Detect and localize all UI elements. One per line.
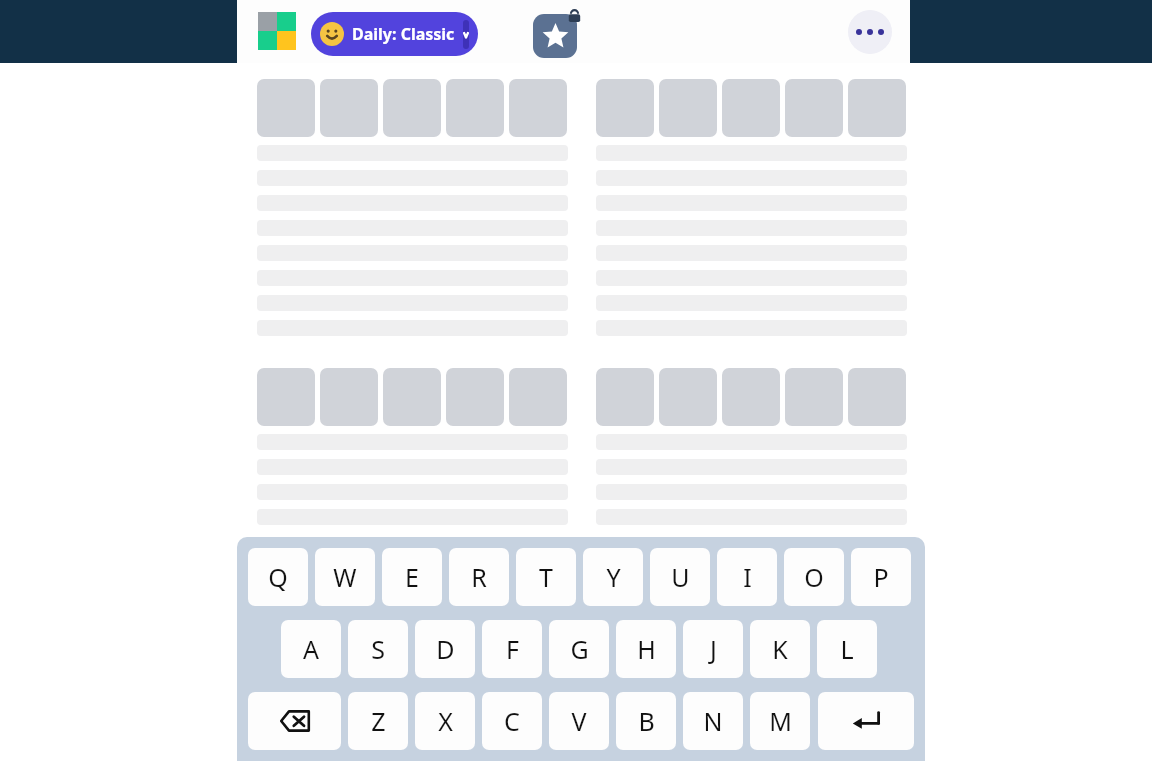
- staticText: I: [743, 560, 752, 594]
- staticText: Y: [606, 560, 621, 594]
- staticText: G: [570, 632, 589, 666]
- button[interactable]: B: [616, 692, 676, 750]
- button[interactable]: Z: [348, 692, 408, 750]
- staticText: Daily: Classic: [352, 23, 455, 45]
- staticText: W: [333, 560, 357, 594]
- staticText: U: [671, 560, 690, 594]
- staticText: Q: [268, 560, 288, 594]
- button[interactable]: Q: [248, 548, 308, 606]
- staticText: R: [471, 560, 487, 594]
- button[interactable]: C: [482, 692, 542, 750]
- staticText: C: [504, 704, 520, 738]
- button[interactable]: D: [415, 620, 475, 678]
- staticText: O: [804, 560, 824, 594]
- button[interactable]: J: [683, 620, 743, 678]
- button[interactable]: F: [482, 620, 542, 678]
- staticText: K: [772, 632, 788, 666]
- button[interactable]: K: [750, 620, 810, 678]
- staticText: V: [571, 704, 587, 738]
- button[interactable]: Home: [258, 12, 296, 50]
- staticText: A: [303, 632, 319, 666]
- button[interactable]: Backspace: [248, 692, 341, 750]
- staticText: J: [710, 632, 717, 666]
- staticText: P: [873, 560, 889, 594]
- staticText: E: [405, 560, 419, 594]
- staticText: T: [539, 560, 553, 594]
- button[interactable]: More options: [848, 10, 892, 54]
- button[interactable]: Y: [583, 548, 643, 606]
- button[interactable]: O: [784, 548, 844, 606]
- staticText: L: [840, 632, 854, 666]
- button[interactable]: P: [851, 548, 911, 606]
- staticText: M: [769, 704, 792, 738]
- staticText: X: [438, 704, 453, 738]
- button[interactable]: L: [817, 620, 877, 678]
- button[interactable]: S: [348, 620, 408, 678]
- button[interactable]: W: [315, 548, 375, 606]
- button[interactable]: G: [549, 620, 609, 678]
- staticText: N: [703, 704, 723, 738]
- staticText: D: [436, 632, 455, 666]
- button[interactable]: N: [683, 692, 743, 750]
- button[interactable]: V: [549, 692, 609, 750]
- button[interactable]: M: [750, 692, 810, 750]
- staticText: Z: [371, 704, 386, 738]
- button[interactable]: T: [516, 548, 576, 606]
- button[interactable]: X: [415, 692, 475, 750]
- button[interactable]: E: [382, 548, 442, 606]
- button[interactable]: Daily: Classic: [311, 12, 478, 56]
- staticText: H: [637, 632, 656, 666]
- button[interactable]: Favorites (locked): [533, 8, 583, 58]
- staticText: F: [506, 632, 519, 666]
- staticText: S: [371, 632, 385, 666]
- staticText: B: [638, 704, 655, 738]
- button[interactable]: Enter: [818, 692, 914, 750]
- button[interactable]: A: [281, 620, 341, 678]
- button[interactable]: R: [449, 548, 509, 606]
- button[interactable]: U: [650, 548, 710, 606]
- button[interactable]: I: [717, 548, 777, 606]
- button[interactable]: H: [616, 620, 676, 678]
